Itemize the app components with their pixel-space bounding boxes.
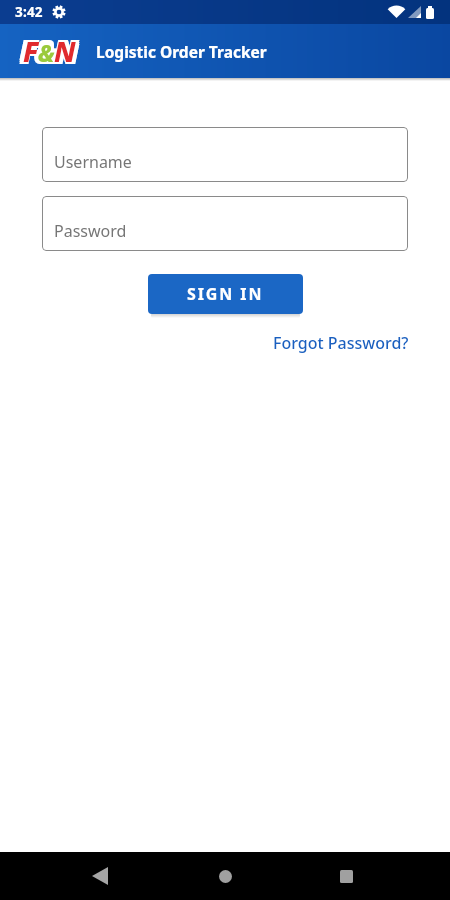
staticText: Forgot Password? (273, 332, 409, 354)
staticText: F&N (21, 30, 77, 68)
staticText: Username (54, 151, 132, 173)
staticText: F&N (19, 34, 75, 72)
staticText: F&N (23, 32, 79, 70)
button[interactable] (322, 852, 370, 900)
button[interactable]: Forgot Password? (273, 332, 409, 354)
button[interactable]: SIGN IN (148, 274, 303, 314)
button[interactable]: Username (42, 127, 408, 182)
button[interactable] (201, 852, 249, 900)
staticText: F&N (19, 30, 75, 68)
staticText: F&N (21, 34, 77, 72)
staticText: F&N (19, 32, 75, 70)
staticText: F&N (23, 34, 79, 72)
staticText: SIGN IN (187, 283, 264, 305)
button[interactable]: Password (42, 196, 408, 251)
staticText: 3:42 (15, 3, 43, 21)
staticText: F&N (23, 32, 76, 70)
button[interactable] (76, 852, 124, 900)
staticText: Password (54, 220, 127, 242)
staticText: F&N (23, 30, 79, 68)
staticText: Logistic Order Tracker (96, 41, 267, 62)
